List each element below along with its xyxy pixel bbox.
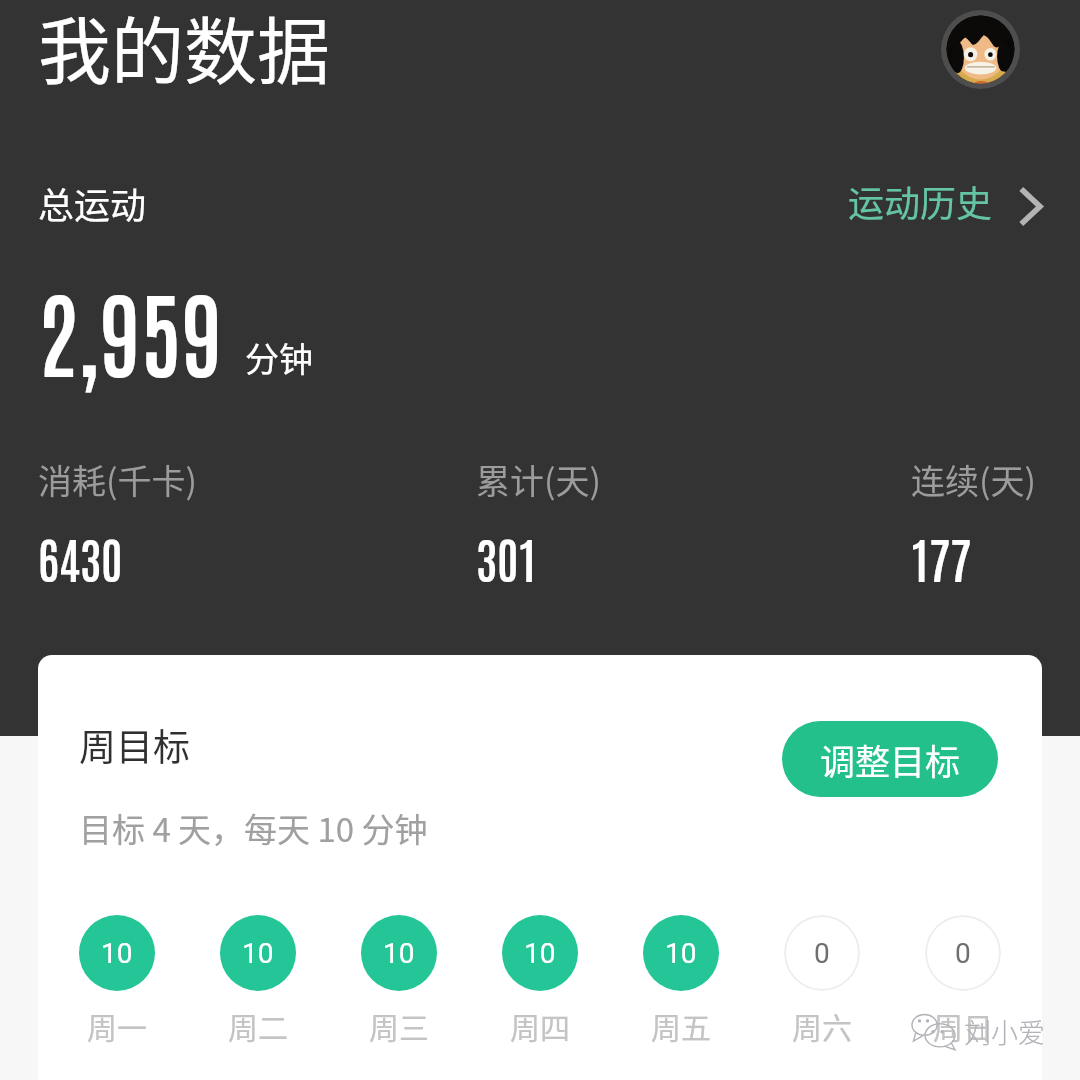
staticText: 刘小爱 bbox=[964, 1012, 1045, 1051]
staticText: 周二 bbox=[228, 1004, 288, 1047]
staticText: 目标 4 天，每天 10 分钟 bbox=[79, 804, 428, 852]
staticText: 10 bbox=[101, 937, 133, 970]
staticText: 2,959 bbox=[37, 268, 222, 390]
button[interactable]: 10 bbox=[79, 915, 155, 991]
staticText: 连续(天) bbox=[911, 455, 1036, 504]
staticText: 10 bbox=[242, 937, 274, 970]
button[interactable]: 10 bbox=[502, 915, 578, 991]
staticText: 调整目标 bbox=[820, 734, 961, 785]
staticText: 301 bbox=[476, 527, 537, 589]
staticText: 10 bbox=[383, 937, 415, 970]
staticText: 10 bbox=[524, 937, 556, 970]
staticText: 周一 bbox=[87, 1004, 147, 1047]
staticText: 6430 bbox=[38, 527, 123, 589]
staticText: 总运动 bbox=[38, 177, 147, 229]
staticText: 运动历史 bbox=[848, 175, 993, 227]
staticText: 分钟 bbox=[245, 333, 313, 382]
staticText: 周三 bbox=[369, 1004, 429, 1047]
staticText: 周目标 bbox=[79, 718, 190, 772]
button[interactable]: 10 bbox=[361, 915, 437, 991]
button[interactable]: 0 bbox=[925, 915, 1001, 991]
button[interactable]: 10 bbox=[220, 915, 296, 991]
button[interactable]: 运动历史 bbox=[848, 175, 1041, 227]
staticText: 10 bbox=[665, 937, 697, 970]
button[interactable]: 调整目标 bbox=[782, 721, 998, 797]
staticText: 0 bbox=[814, 937, 830, 970]
staticText: 周五 bbox=[651, 1004, 711, 1047]
staticText: 消耗(千卡) bbox=[38, 455, 197, 504]
staticText: 我的数据 bbox=[38, 0, 330, 99]
staticText: 177 bbox=[911, 527, 972, 589]
staticText: 周六 bbox=[792, 1004, 852, 1047]
staticText: 周四 bbox=[510, 1004, 570, 1047]
button[interactable]: 10 bbox=[643, 915, 719, 991]
staticText: 周日 bbox=[933, 1004, 993, 1047]
staticText: 累计(天) bbox=[476, 455, 601, 504]
staticText: 0 bbox=[955, 937, 971, 970]
button[interactable]: 0 bbox=[784, 915, 860, 991]
button[interactable]: Profile bbox=[941, 10, 1020, 89]
